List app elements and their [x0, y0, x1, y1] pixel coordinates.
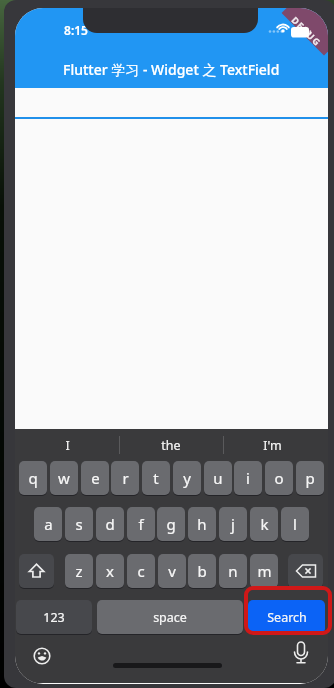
button[interactable]: the [111, 431, 231, 459]
staticText: y [183, 468, 191, 488]
staticText: DEBUG [289, 14, 324, 48]
staticText: l [293, 514, 297, 534]
staticText: i [246, 468, 250, 488]
staticText: j [231, 514, 235, 534]
staticText: 123 [43, 609, 65, 626]
button[interactable]: r [111, 461, 139, 495]
button[interactable]: 123 [16, 600, 92, 634]
staticText: t [153, 468, 159, 488]
staticText: p [305, 468, 315, 488]
button[interactable]: p [296, 461, 324, 495]
button[interactable]: c [127, 554, 155, 588]
button[interactable]: space [97, 600, 243, 634]
button[interactable]: I'm [212, 431, 328, 459]
staticText: g [166, 514, 176, 534]
button[interactable]: x [96, 554, 124, 588]
staticText: 8:15 [64, 22, 88, 38]
staticText: I [65, 437, 70, 454]
button[interactable]: w [50, 461, 78, 495]
button[interactable]: k [250, 507, 278, 541]
button[interactable]: v [158, 554, 186, 588]
staticText: s [75, 514, 83, 534]
button[interactable]: d [96, 507, 124, 541]
button[interactable]: i [234, 461, 262, 495]
staticText: the [161, 437, 181, 454]
staticText: c [137, 561, 145, 581]
staticText: u [213, 468, 223, 488]
staticText: z [75, 561, 83, 581]
button[interactable] [33, 647, 51, 665]
staticText: d [105, 514, 115, 534]
staticText: n [228, 561, 238, 581]
button[interactable] [293, 641, 309, 667]
button[interactable]: Search [248, 600, 325, 634]
staticText: w [58, 468, 70, 488]
button[interactable]: g [157, 507, 185, 541]
button[interactable]: I [15, 431, 127, 459]
staticText: x [106, 561, 114, 581]
staticText: r [122, 468, 129, 488]
button[interactable]: h [188, 507, 216, 541]
staticText: Search [267, 609, 307, 626]
button[interactable] [288, 554, 323, 588]
button[interactable]: m [250, 554, 278, 588]
staticText: q [28, 468, 38, 488]
staticText: Flutter 学习 - Widget 之 TextField [63, 60, 280, 79]
staticText: e [91, 468, 100, 488]
button[interactable]: u [204, 461, 232, 495]
button[interactable]: j [219, 507, 247, 541]
button[interactable]: e [81, 461, 109, 495]
staticText: h [197, 514, 207, 534]
button[interactable]: l [281, 507, 309, 541]
staticText: a [44, 514, 53, 534]
staticText: f [138, 514, 144, 534]
button[interactable]: s [65, 507, 93, 541]
button[interactable]: b [188, 554, 216, 588]
staticText: space [153, 609, 187, 626]
button[interactable]: n [219, 554, 247, 588]
staticText: v [168, 561, 176, 581]
button[interactable]: z [65, 554, 93, 588]
staticText: b [197, 561, 207, 581]
staticText: m [257, 561, 272, 581]
button[interactable]: a [34, 507, 62, 541]
button[interactable]: f [127, 507, 155, 541]
staticText: I'm [263, 437, 282, 454]
button[interactable]: q [19, 461, 47, 495]
staticText: k [260, 514, 269, 534]
staticText: o [274, 468, 284, 488]
button[interactable]: t [142, 461, 170, 495]
button[interactable] [19, 554, 54, 588]
button[interactable]: o [265, 461, 293, 495]
button[interactable]: y [173, 461, 201, 495]
